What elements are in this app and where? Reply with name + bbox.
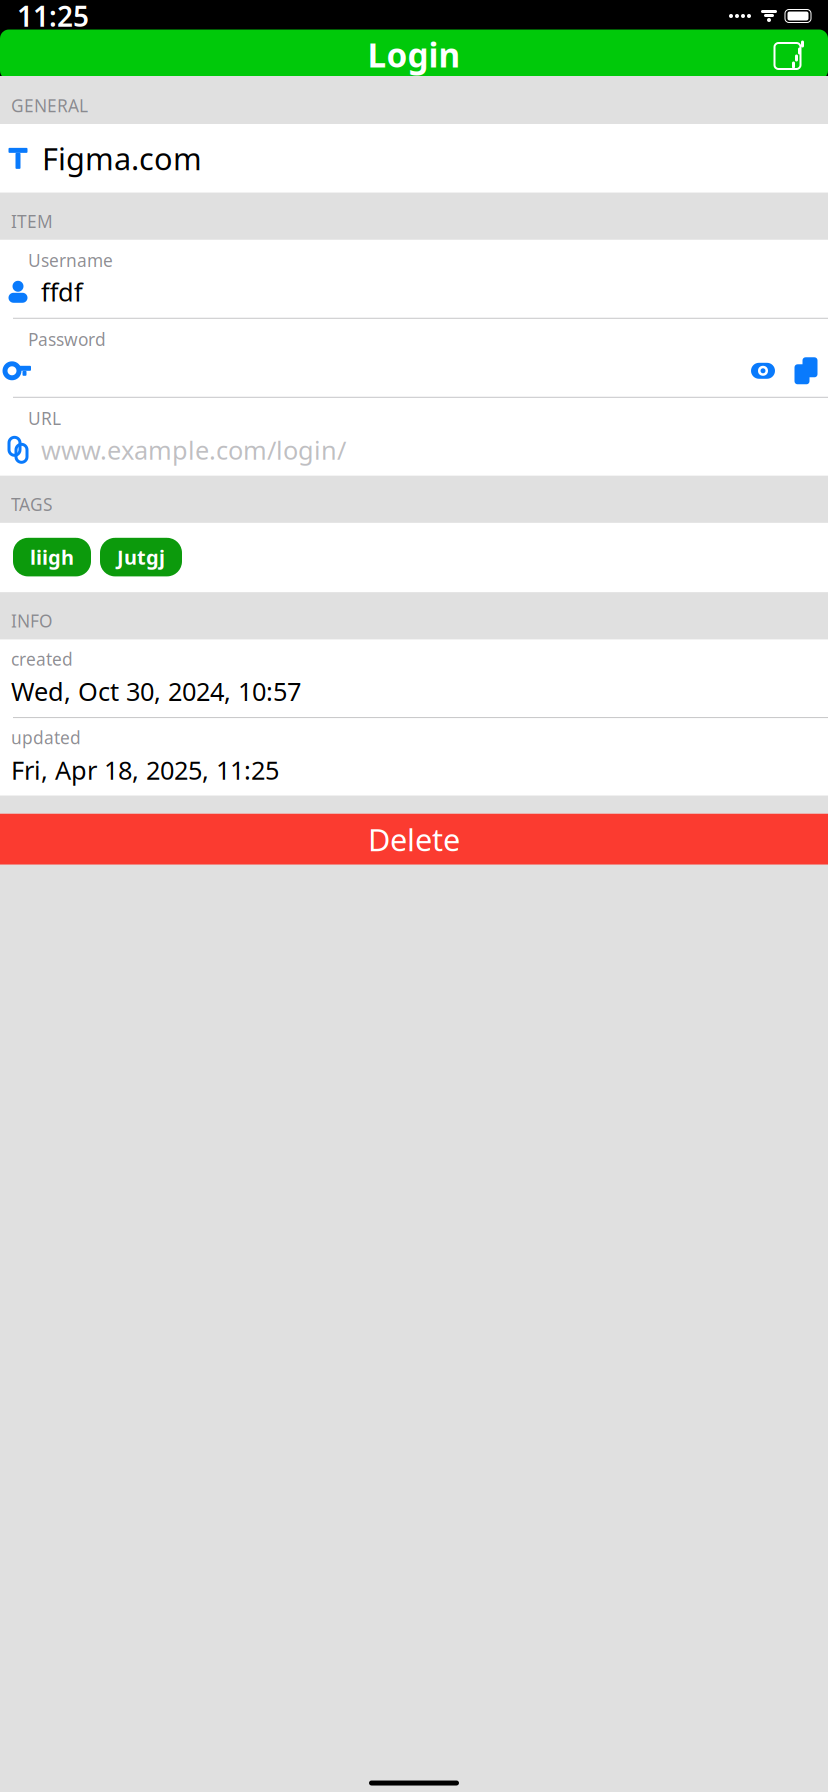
staticText: Username <box>28 249 113 272</box>
button[interactable]: Edit <box>762 29 816 79</box>
button[interactable]: Username <box>0 240 828 318</box>
staticText: GENERAL <box>11 94 88 117</box>
button[interactable]: Jutgj <box>100 538 182 576</box>
button[interactable]: Figma.com <box>0 124 828 193</box>
button[interactable]: Show password <box>741 356 785 386</box>
staticText: Login <box>367 32 460 77</box>
staticText: TAGS <box>11 493 53 516</box>
staticText: Fri, Apr 18, 2025, 11:25 <box>11 753 279 787</box>
button[interactable]: Copy password <box>785 353 824 389</box>
staticText: created <box>11 647 73 670</box>
staticText: INFO <box>11 609 53 632</box>
staticText: liigh <box>30 544 74 570</box>
button[interactable]: liigh <box>13 538 91 576</box>
button[interactable]: URL <box>0 398 828 476</box>
staticText: Password <box>28 328 106 351</box>
staticText: updated <box>11 726 81 749</box>
button[interactable]: Delete <box>0 814 828 865</box>
button[interactable]: Password <box>0 319 828 397</box>
staticText: Wed, Oct 30, 2024, 10:57 <box>11 674 301 708</box>
staticText: www.example.com/login/ <box>41 433 346 467</box>
staticText: URL <box>28 407 61 430</box>
staticText: Delete <box>368 819 460 860</box>
staticText: ffdf <box>41 275 83 309</box>
staticText: Jutgj <box>117 544 165 570</box>
staticText: ITEM <box>11 210 53 233</box>
staticText: Figma.com <box>42 138 202 179</box>
staticText: 11:25 <box>17 0 89 35</box>
